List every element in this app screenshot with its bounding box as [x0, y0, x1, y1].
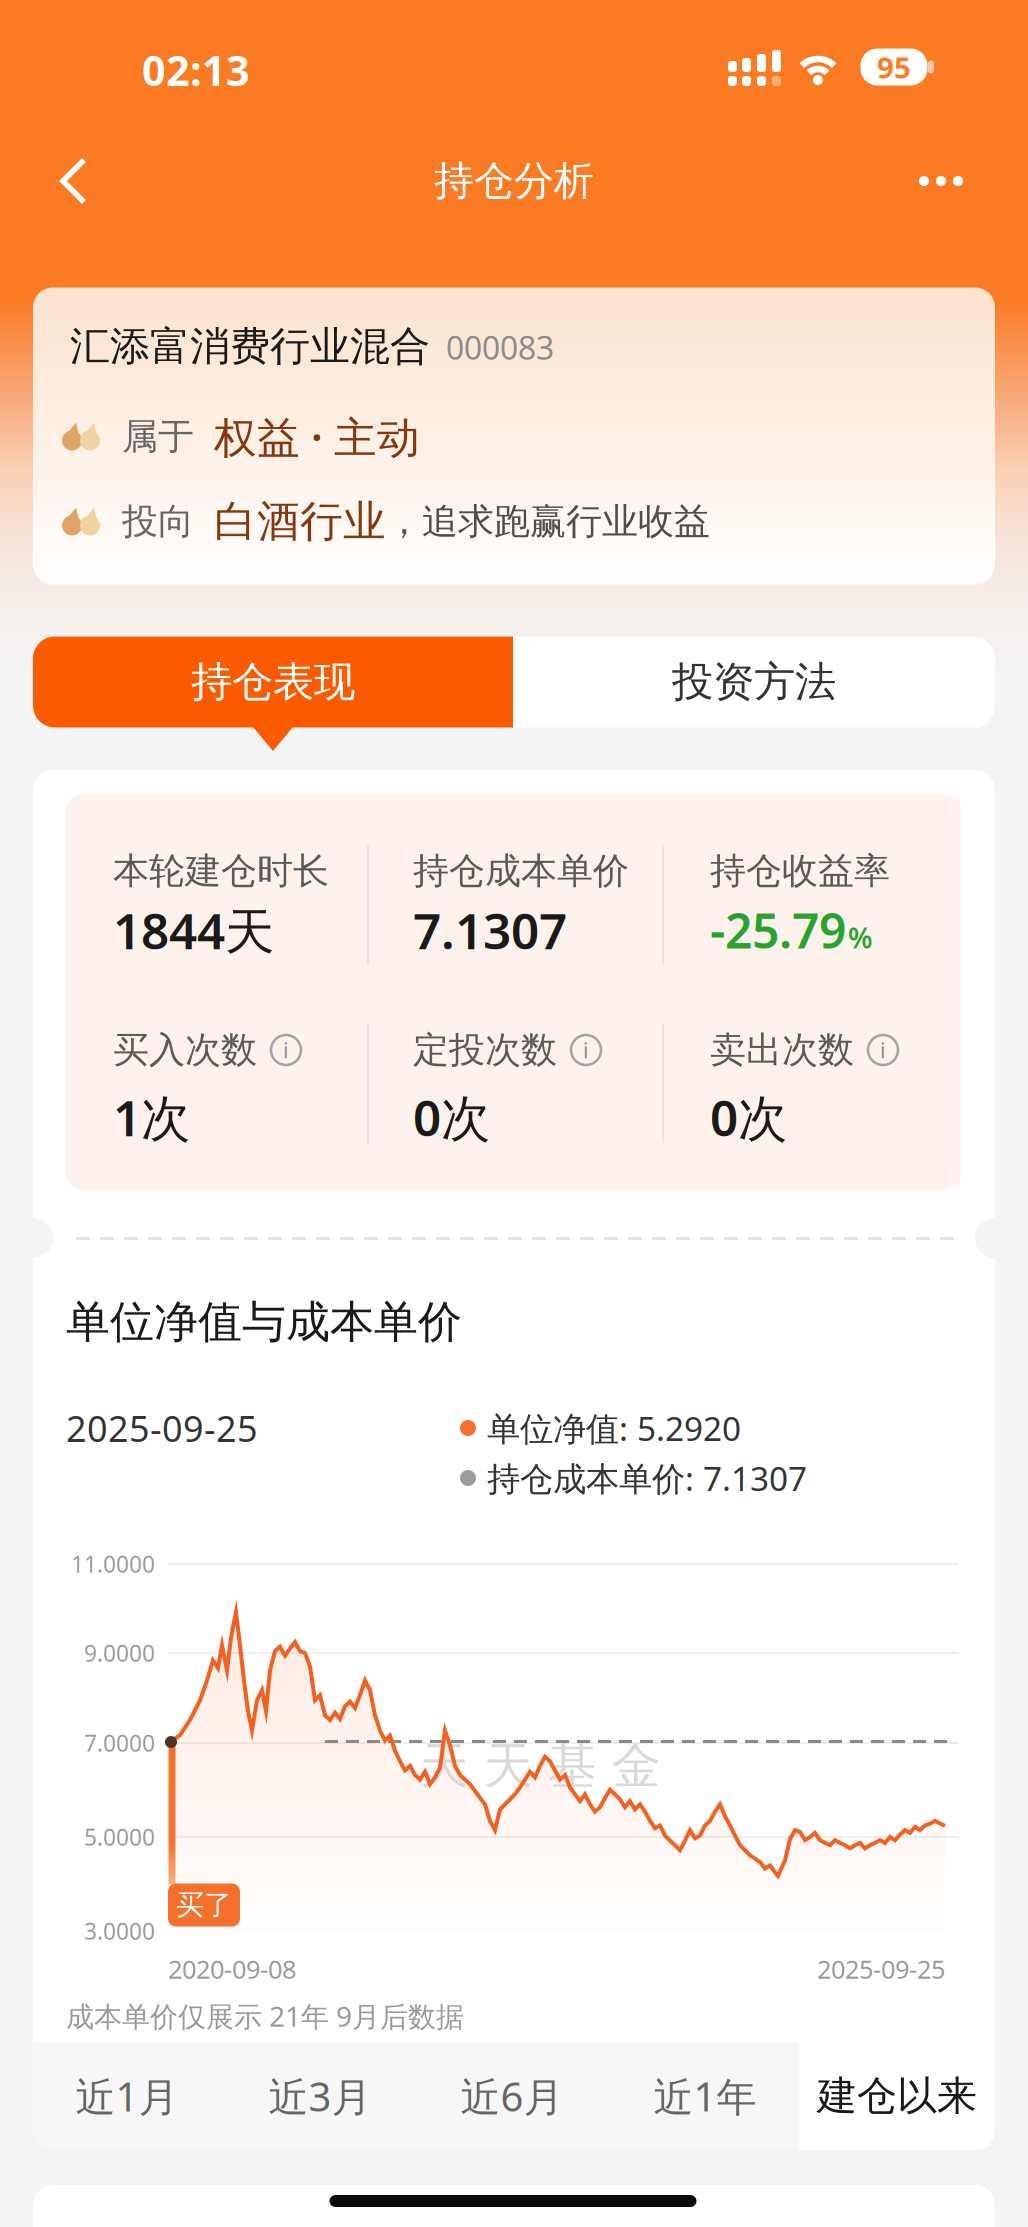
staticText: 1次: [113, 1084, 190, 1150]
staticText: 买入次数: [113, 1028, 257, 1072]
staticText: 属于: [122, 414, 194, 459]
staticText: 2020-09-08: [168, 1952, 296, 1986]
staticText: 02:13: [142, 43, 250, 97]
staticText: 单位净值: 5.2920: [487, 1406, 741, 1450]
button[interactable]: 卖出次数说明: [866, 1033, 900, 1067]
button[interactable]: 持仓表现: [33, 636, 513, 727]
staticText: 持仓成本单价: [413, 849, 629, 893]
staticText: 2025-09-25: [66, 1404, 258, 1452]
staticText: 0次: [413, 1084, 490, 1150]
staticText: 000083: [446, 326, 554, 369]
staticText: i: [283, 1036, 289, 1064]
staticText: 持仓分析: [434, 156, 594, 205]
staticText: 11.0000: [71, 1549, 155, 1579]
staticText: 95: [877, 47, 911, 86]
staticText: 单位净值与成本单价: [66, 1295, 462, 1349]
staticText: 2025-09-25: [817, 1952, 945, 1986]
staticText: 3.0000: [84, 1916, 155, 1946]
staticText: ，追求跑赢行业收益: [386, 499, 710, 544]
button[interactable]: Back: [59, 158, 105, 204]
staticText: 本轮建仓时长: [113, 849, 329, 893]
staticText: 汇添富消费行业混合: [70, 322, 430, 371]
staticText: 投资方法: [672, 657, 836, 707]
staticText: 天 天 基 金: [419, 1736, 660, 1796]
staticText: 近6月: [460, 2069, 563, 2122]
button[interactable]: 投资方法: [514, 636, 994, 727]
staticText: 持仓成本单价: 7.1307: [487, 1456, 807, 1500]
button[interactable]: 近1年: [610, 2042, 800, 2150]
staticText: 持仓表现: [191, 657, 355, 707]
staticText: 卖出次数: [710, 1028, 854, 1072]
staticText: 9.0000: [84, 1638, 155, 1668]
staticText: 建仓以来: [817, 2071, 977, 2120]
button[interactable]: 建仓以来: [802, 2042, 992, 2150]
staticText: 近3月: [268, 2069, 371, 2122]
staticText: 1844天: [113, 897, 274, 963]
button[interactable]: 近6月: [417, 2042, 607, 2150]
staticText: 7.1307: [413, 897, 567, 963]
button[interactable]: 定投次数说明: [569, 1033, 603, 1067]
staticText: 近1年: [653, 2069, 756, 2122]
button[interactable]: More: [913, 159, 969, 203]
button[interactable]: 近3月: [225, 2042, 415, 2150]
staticText: 买了: [176, 1888, 232, 1922]
staticText: 定投次数: [413, 1028, 557, 1072]
staticText: i: [583, 1036, 589, 1064]
button[interactable]: 近1月: [32, 2042, 222, 2150]
staticText: -25.79: [710, 898, 846, 962]
staticText: i: [880, 1036, 886, 1064]
staticText: 白酒行业: [214, 495, 386, 548]
staticText: 7.0000: [84, 1728, 155, 1758]
staticText: 5.0000: [84, 1822, 155, 1852]
staticText: 近1月: [75, 2069, 178, 2122]
staticText: 权益 · 主动: [214, 408, 420, 465]
staticText: 投向: [122, 499, 194, 544]
button[interactable]: 买入次数说明: [269, 1033, 303, 1067]
staticText: %: [848, 919, 873, 956]
staticText: 成本单价仅展示 21年 9月后数据: [66, 1997, 464, 2035]
staticText: 持仓收益率: [710, 849, 890, 893]
staticText: 0次: [710, 1084, 787, 1150]
